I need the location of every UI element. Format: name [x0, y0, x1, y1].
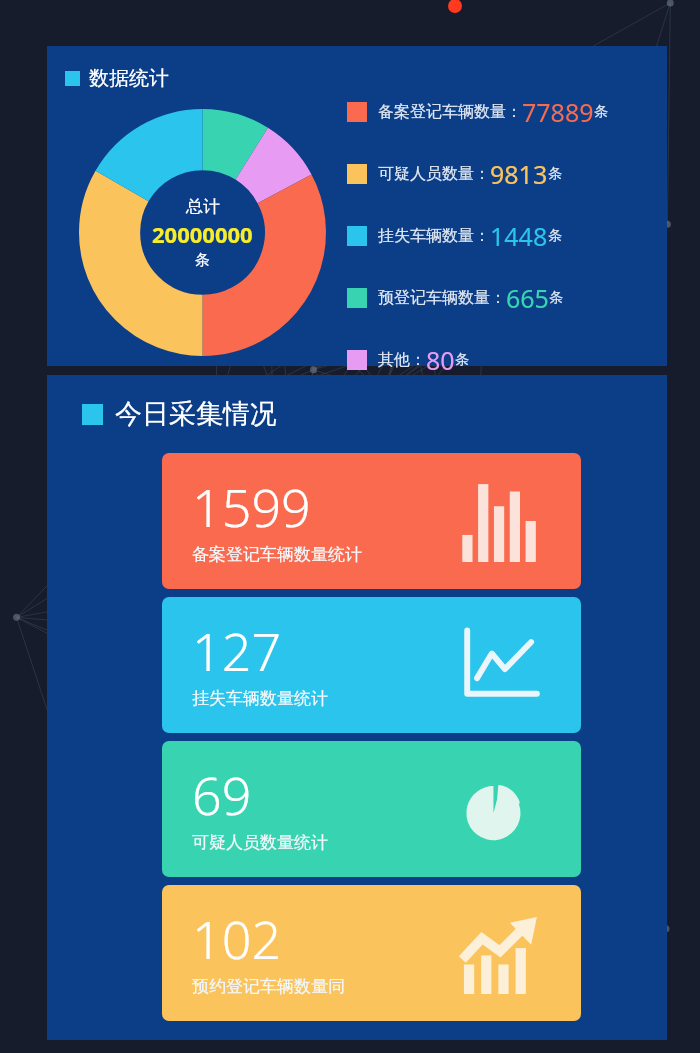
staticText: 77889: [522, 95, 594, 129]
staticText: 条: [594, 103, 608, 121]
other: Bar chart: [459, 480, 541, 562]
staticText: 总计: [186, 196, 220, 217]
button[interactable]: 挂失车辆数量：: [347, 218, 562, 254]
staticText: 备案登记车辆数量：: [378, 102, 522, 122]
staticText: 预登记车辆数量：: [378, 288, 506, 308]
staticText: 条: [548, 227, 562, 245]
staticText: 备案登记车辆数量统计: [192, 544, 362, 565]
staticText: 1599: [192, 471, 311, 542]
staticText: 可疑人员数量：: [378, 164, 490, 184]
staticText: 其他：: [378, 350, 426, 370]
button[interactable]: 备案登记车辆数量：: [347, 94, 608, 130]
staticText: 条: [548, 165, 562, 183]
staticText: 预约登记车辆数量同: [192, 976, 345, 997]
staticText: 挂失车辆数量统计: [192, 688, 328, 709]
other: Growth chart: [459, 912, 541, 994]
staticText: 102: [192, 903, 282, 974]
staticText: 条: [549, 289, 563, 307]
staticText: 今日采集情况: [115, 397, 277, 431]
other: Line chart: [459, 624, 541, 706]
button[interactable]: 可疑人员数量：: [347, 156, 562, 192]
staticText: 条: [195, 251, 210, 270]
staticText: 665: [506, 281, 549, 315]
button[interactable]: 127: [162, 597, 581, 733]
button[interactable]: 其他：: [347, 342, 469, 378]
staticText: 9813: [490, 157, 548, 191]
staticText: 1448: [490, 219, 548, 253]
button[interactable]: 预登记车辆数量：: [347, 280, 563, 316]
staticText: 条: [455, 351, 469, 369]
button[interactable]: 102: [162, 885, 581, 1021]
staticText: 数据统计: [89, 66, 169, 91]
button[interactable]: 1599: [162, 453, 581, 589]
staticText: 80: [426, 343, 455, 377]
staticText: 20000000: [152, 219, 253, 249]
other: Pie chart: [459, 768, 541, 850]
staticText: 69: [192, 759, 252, 830]
staticText: 可疑人员数量统计: [192, 832, 328, 853]
button[interactable]: 69: [162, 741, 581, 877]
staticText: 127: [192, 615, 282, 686]
staticText: 挂失车辆数量：: [378, 226, 490, 246]
